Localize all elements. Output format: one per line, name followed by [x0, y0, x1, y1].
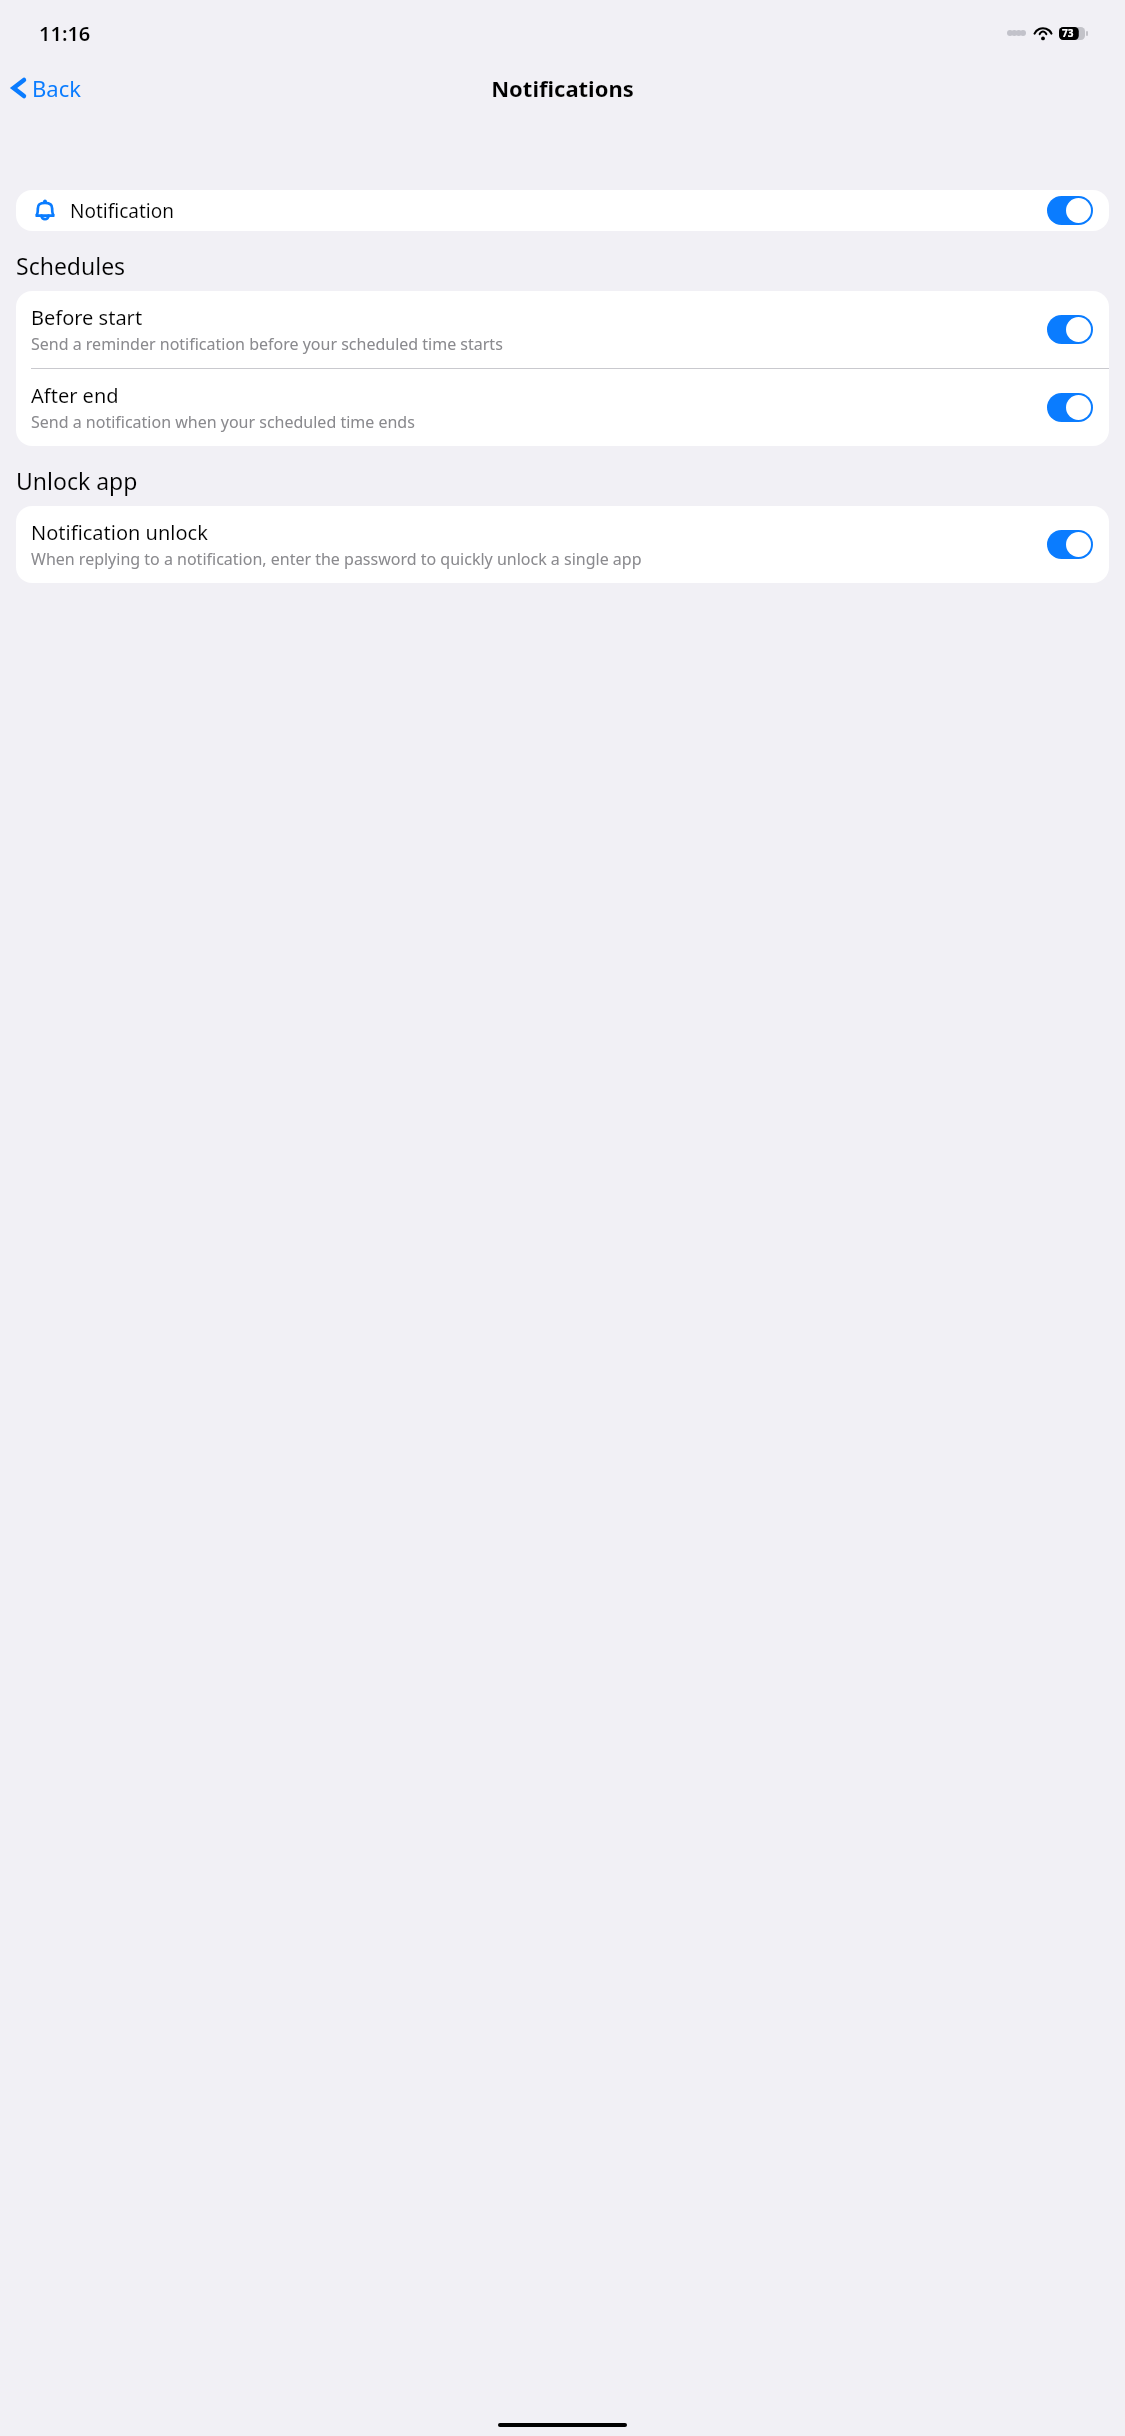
button[interactable]: Toggle [1047, 196, 1093, 225]
button[interactable]: Toggle [1047, 315, 1093, 344]
staticText: Notification [70, 198, 174, 224]
button[interactable]: Toggle [1047, 530, 1093, 559]
button[interactable]: Toggle [1047, 393, 1093, 422]
staticText: Unlock app [16, 465, 138, 496]
button[interactable]: After end [16, 369, 1109, 446]
staticText: 11:16 [39, 20, 91, 47]
staticText: Before start [31, 304, 143, 331]
button[interactable]: Notification [16, 190, 1109, 231]
staticText: Schedules [16, 250, 126, 281]
staticText: Back [32, 73, 81, 103]
staticText: Send a reminder notification before your… [31, 333, 503, 355]
button[interactable]: Notification unlock [16, 506, 1109, 583]
staticText: Notification unlock [31, 519, 208, 546]
staticText: Send a notification when your scheduled … [31, 411, 415, 433]
staticText: When replying to a notification, enter t… [31, 548, 642, 570]
button[interactable]: Before start [16, 291, 1109, 368]
staticText: After end [31, 382, 119, 409]
button[interactable]: Back [0, 67, 91, 109]
staticText: Notifications [491, 73, 634, 103]
staticText: 73 [1062, 26, 1074, 40]
